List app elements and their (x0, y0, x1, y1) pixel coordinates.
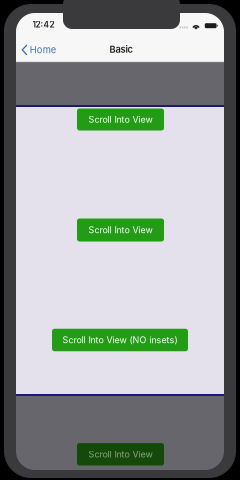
staticText: Home (30, 44, 56, 56)
button[interactable]: Scroll Into View (77, 108, 164, 130)
staticText: Scroll Into View (88, 449, 152, 460)
staticText: Scroll Into View (88, 114, 152, 125)
button[interactable]: Scroll Into View (NO insets) (52, 329, 188, 351)
staticText: 12:42 (32, 19, 54, 29)
button[interactable]: Home (16, 39, 64, 61)
staticText: Scroll Into View (NO insets) (62, 335, 177, 345)
button[interactable]: Scroll Into View (77, 218, 164, 241)
button[interactable]: Scroll Into View (77, 443, 164, 466)
staticText: Basic (109, 44, 132, 55)
staticText: Scroll Into View (88, 225, 152, 235)
